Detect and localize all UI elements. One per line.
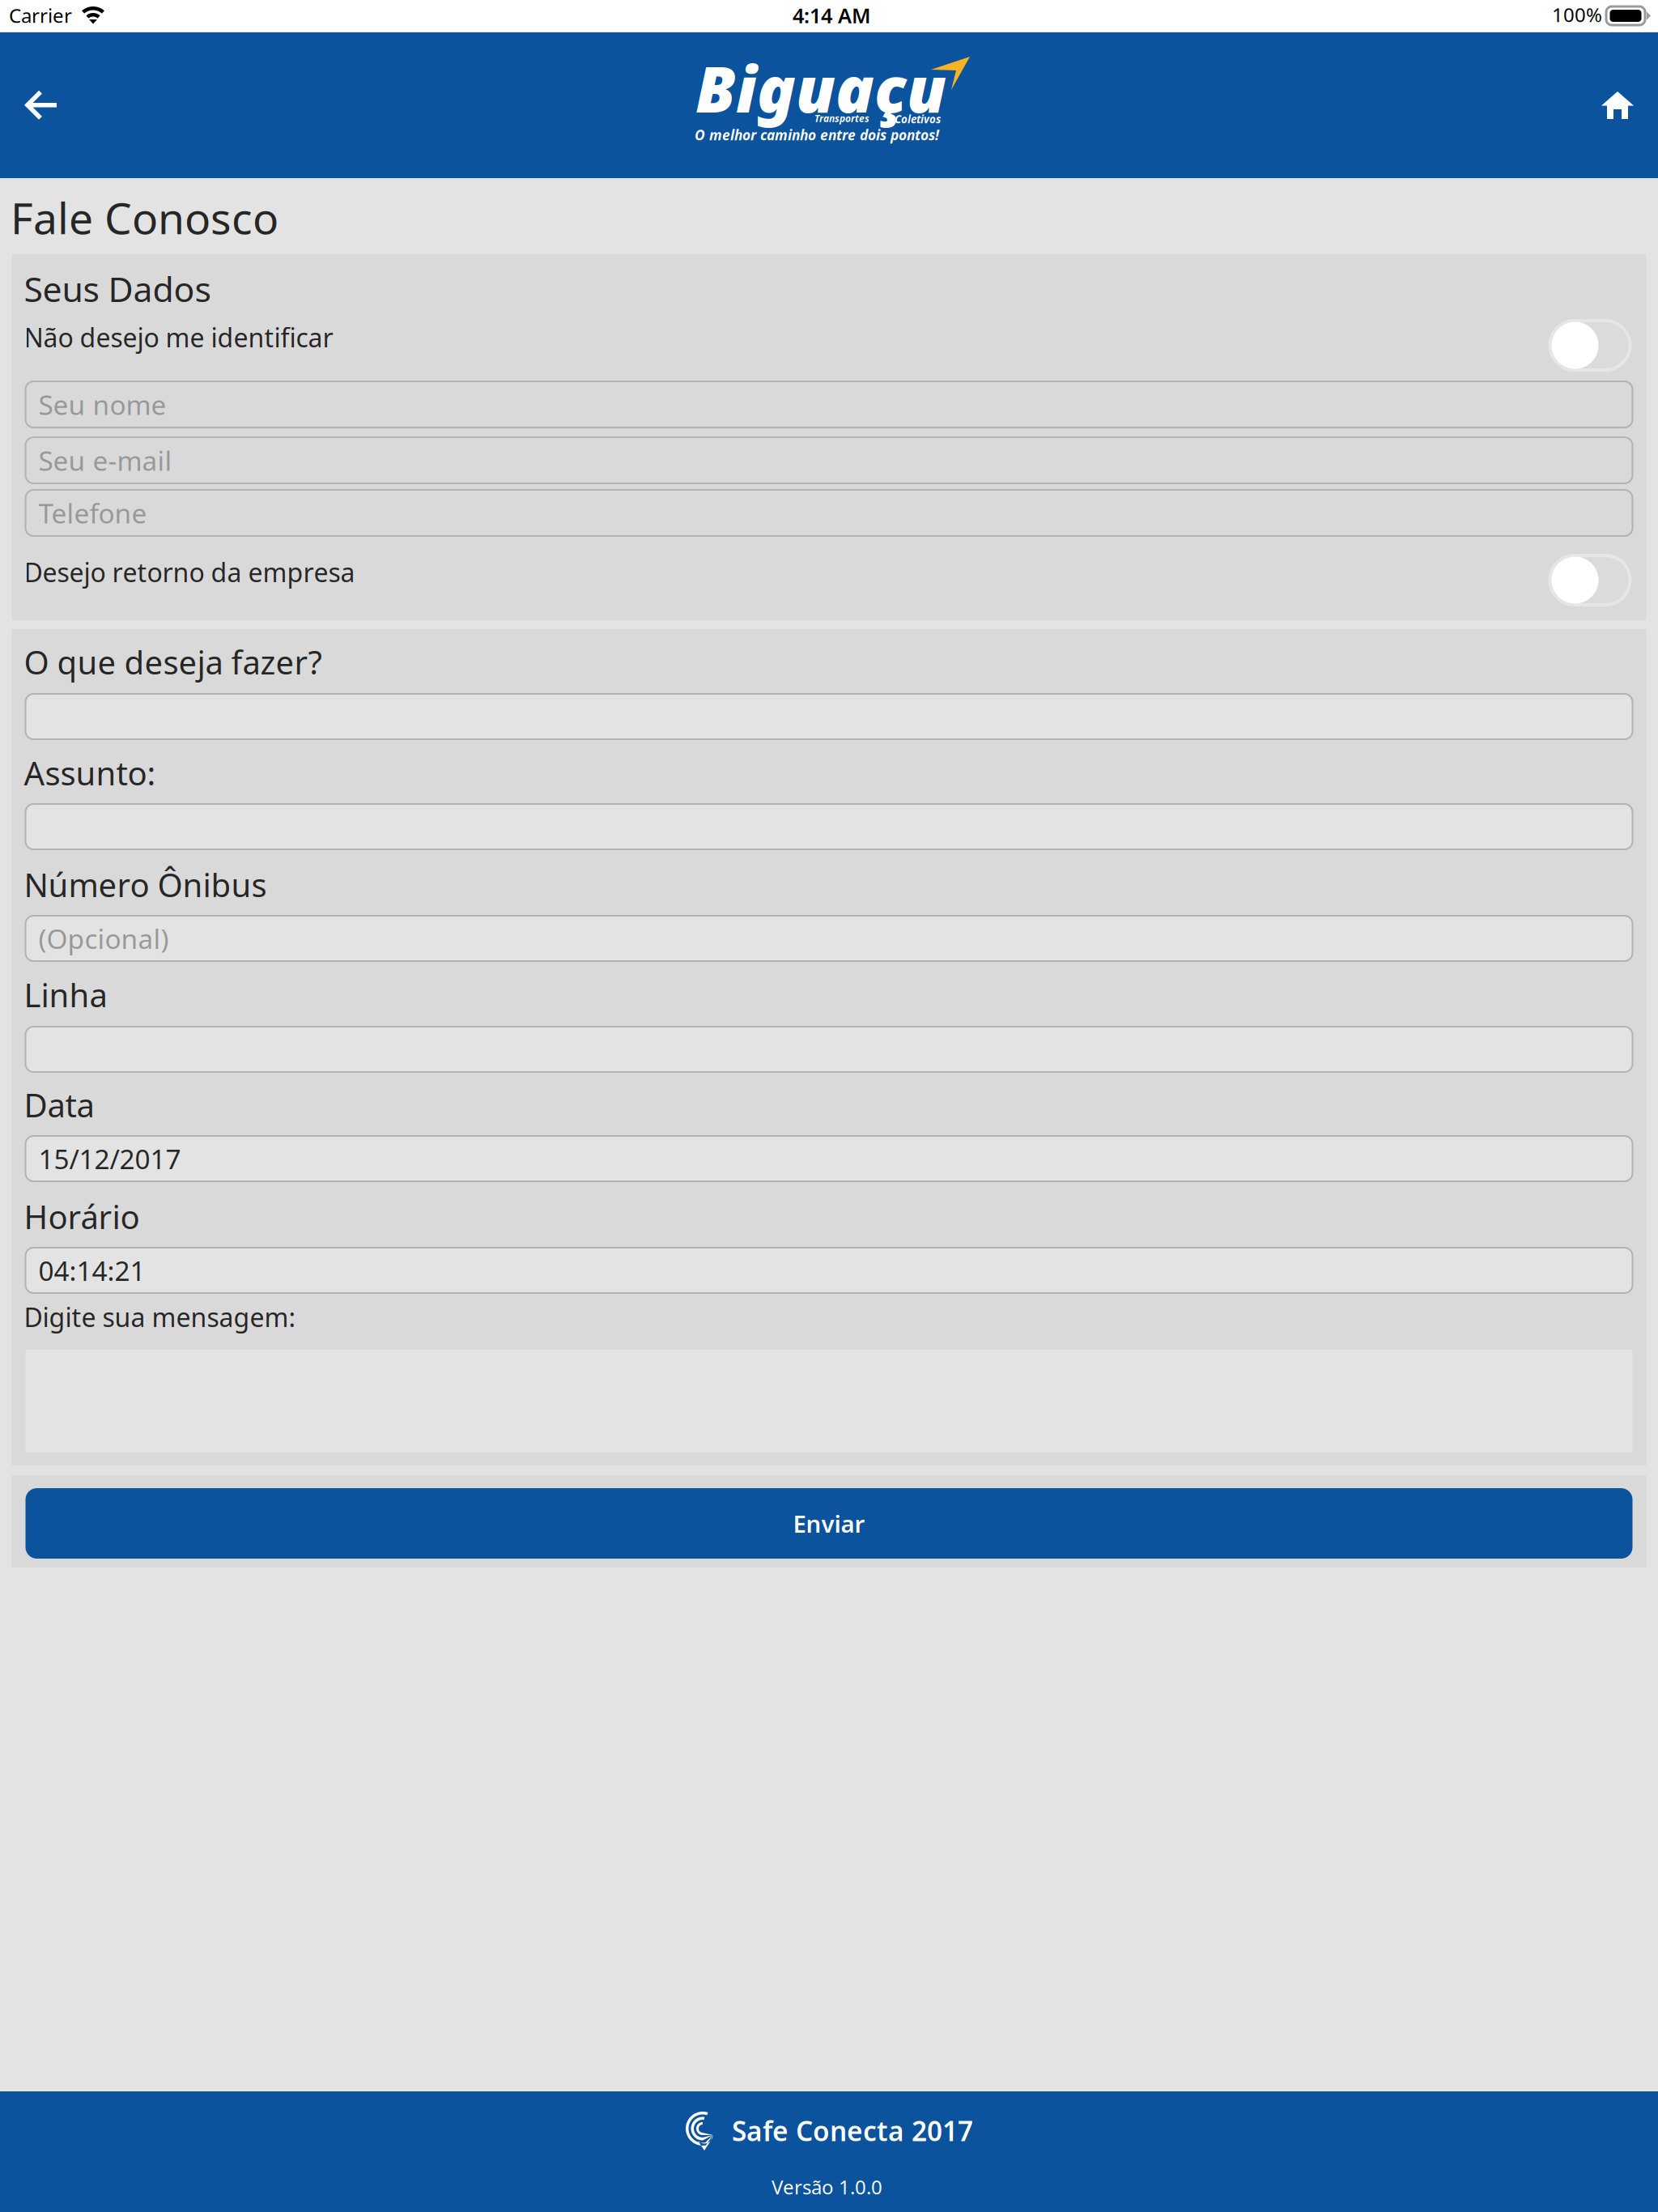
staticText: Seus Dados [24,266,211,312]
staticText: Data [24,1083,94,1126]
staticText: 4:14 AM [793,2,871,29]
staticText: Safe Conecta 2017 [732,2113,973,2149]
staticText: Versão 1.0.0 [772,2174,882,2200]
staticText: Assunto: [24,751,156,794]
button[interactable]: Home [1579,52,1656,159]
staticText: 100% [1552,2,1602,28]
staticText: Enviar [793,1508,865,1539]
staticText: Digite sua mensagem: [24,1300,296,1334]
staticText: Não desejo me identificar [24,320,333,354]
staticText: Fale Conosco [11,189,278,246]
staticText: 04:14:21 [38,1252,145,1288]
button[interactable]: Desejo retorno da empresa [12,555,1646,606]
staticText: Transportes [814,112,869,125]
staticText: Telefone [38,495,147,531]
button[interactable]: Não desejo me identificar [12,320,1646,372]
staticText: O melhor caminho entre dois pontos! [695,125,939,144]
staticText: Seu nome [38,387,166,422]
staticText: Biguaçu [695,46,946,130]
staticText: Linha [24,973,107,1016]
button[interactable]: Enviar [26,1488,1632,1559]
staticText: Horário [24,1195,140,1238]
staticText: O que deseja fazer? [24,640,322,683]
button[interactable]: Back [2,52,79,159]
staticText: (Opcional) [38,921,169,956]
staticText: 15/12/2017 [38,1141,181,1177]
staticText: Coletivos [895,112,941,126]
staticText: Seu e-mail [38,442,172,478]
staticText: Carrier [9,3,72,28]
staticText: Número Ônibus [24,863,267,906]
staticText: Desejo retorno da empresa [24,555,355,589]
